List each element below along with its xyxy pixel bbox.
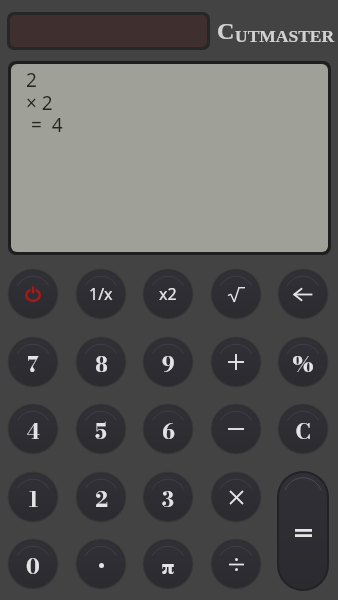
button[interactable]: 6 [142,403,194,455]
staticText: UTMASTER [235,26,335,45]
button[interactable]: Divide [210,538,262,590]
staticText: 5 [95,415,107,447]
staticText: × 2 [26,90,53,116]
staticText: π [161,550,175,582]
button[interactable]: C [277,403,329,455]
staticText: 1 [28,483,39,515]
staticText: 7 [27,348,39,380]
button[interactable]: Backspace [277,268,329,320]
button[interactable]: 8 [75,336,127,388]
button[interactable]: x2 [142,268,194,320]
button[interactable]: 4 [7,403,59,455]
staticText: = 4 [26,112,63,138]
staticText: 2 [95,483,108,515]
button[interactable]: Equals [277,471,329,591]
staticText: 2 [26,67,37,93]
button[interactable]: 2 [75,471,127,523]
staticText: 3 [162,483,174,515]
button[interactable]: % [277,336,329,388]
staticText: 8 [95,348,108,380]
button[interactable]: 1/x [75,268,127,320]
button[interactable]: 0 [7,538,59,590]
staticText: % [292,348,314,380]
staticText: 9 [162,348,175,380]
staticText: x2 [159,283,177,305]
button[interactable]: Minus [210,403,262,455]
button[interactable] [75,538,127,590]
staticText: 6 [162,415,175,447]
staticText: C [295,415,311,447]
button[interactable]: Power [7,268,59,320]
staticText: 1/x [89,283,113,305]
button[interactable]: π [142,538,194,590]
button[interactable]: 1 [7,471,59,523]
button[interactable]: 5 [75,403,127,455]
button[interactable]: Square root [210,268,262,320]
staticText: 0 [26,550,40,582]
button[interactable]: Plus [210,336,262,388]
staticText: C [217,18,235,45]
button[interactable]: Multiply [210,471,262,523]
button[interactable]: 9 [142,336,194,388]
button[interactable]: 3 [142,471,194,523]
button[interactable]: 7 [7,336,59,388]
staticText: 4 [26,415,40,447]
